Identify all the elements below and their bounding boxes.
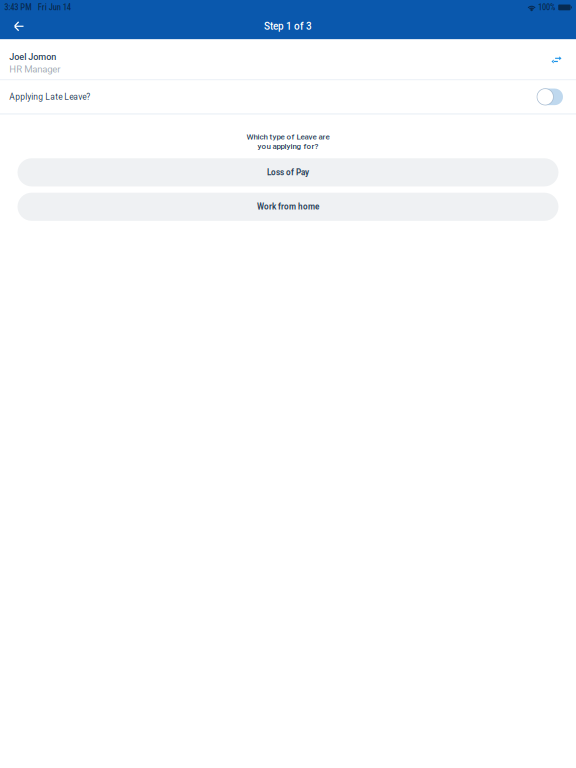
staticText: Joel Jomon — [9, 52, 56, 62]
staticText: Fri Jun 14 — [38, 2, 71, 12]
staticText: Which type of Leave are — [246, 132, 329, 142]
button[interactable]: Work from home — [17, 193, 558, 221]
staticText: Loss of Pay — [267, 168, 309, 177]
button[interactable]: Back — [0, 13, 37, 39]
staticText: Applying Late Leave? — [9, 92, 90, 102]
staticText: 3:43 PM — [4, 2, 31, 12]
staticText: 100% — [538, 2, 555, 12]
staticText: you applying for? — [257, 142, 318, 151]
staticText: HR Manager — [9, 63, 60, 75]
button[interactable]: Loss of Pay — [17, 158, 558, 186]
button[interactable]: Switch employee — [544, 48, 569, 72]
staticText: Step 1 of 3 — [264, 20, 312, 32]
button[interactable]: Applying Late Leave — [537, 88, 563, 106]
staticText: Work from home — [257, 202, 319, 211]
